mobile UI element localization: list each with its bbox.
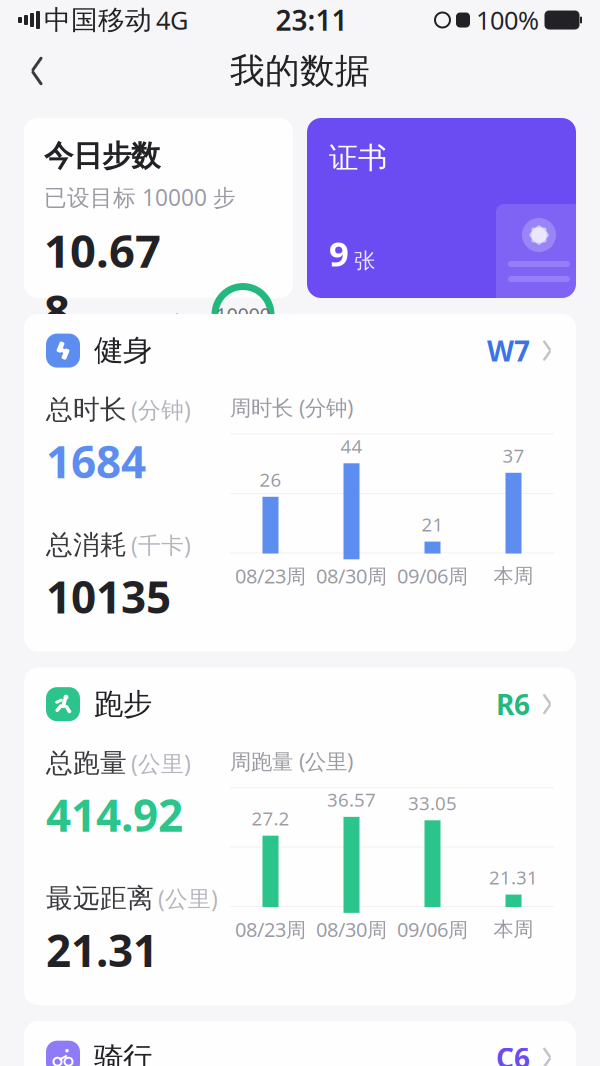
staticText: 中国移动 xyxy=(44,4,152,36)
staticText: 10135 xyxy=(46,567,171,625)
staticText: 100% xyxy=(476,3,539,37)
staticText: 09/06周 xyxy=(397,562,468,589)
staticText: 总跑量 xyxy=(46,747,127,779)
staticText: R6 xyxy=(496,686,530,723)
button[interactable]: 证书 xyxy=(307,118,576,298)
button[interactable]: 跑步 xyxy=(24,668,576,741)
staticText: 最远距离 xyxy=(46,882,154,915)
staticText: 08/23周 xyxy=(235,562,306,589)
staticText: 周时长 (分钟) xyxy=(230,393,353,421)
staticText: 总时长 xyxy=(46,393,127,426)
staticText: 08/30周 xyxy=(316,562,387,589)
staticText: 27.2 xyxy=(251,806,289,831)
staticText: 09/06周 xyxy=(397,916,468,943)
button[interactable]: 健身 xyxy=(24,314,576,387)
staticText: 10000 xyxy=(215,301,270,328)
staticText: 步 xyxy=(166,310,187,336)
staticText: W7 xyxy=(487,332,530,369)
staticText: 21.31 xyxy=(46,921,158,979)
button[interactable]: 今日步数 xyxy=(24,118,293,298)
staticText: 23:11 xyxy=(275,1,347,39)
staticText: 已设目标 10000 步 xyxy=(44,182,236,212)
button[interactable]: 返回 xyxy=(14,48,60,94)
staticText: 26 xyxy=(259,467,281,492)
staticText: (公里) xyxy=(158,883,218,913)
staticText: 本周 xyxy=(493,917,533,942)
staticText: 4G xyxy=(156,3,188,37)
staticText: 08/30周 xyxy=(316,916,387,943)
staticText: (分钟) xyxy=(131,395,191,425)
staticText: 骑行 xyxy=(94,1040,152,1066)
button[interactable]: 骑行 xyxy=(24,1021,576,1066)
staticText: 今日步数 xyxy=(44,138,160,174)
staticText: 37 xyxy=(502,443,524,468)
staticText: 周跑量 (公里) xyxy=(230,747,353,775)
staticText: 总消耗 xyxy=(46,528,127,561)
staticText: 36.57 xyxy=(327,787,376,812)
staticText: (公里) xyxy=(131,748,191,778)
staticText: 9 xyxy=(329,230,349,276)
staticText: 44 xyxy=(340,433,362,458)
staticText: (千卡) xyxy=(131,530,191,560)
staticText: 张 xyxy=(354,248,375,274)
staticText: C6 xyxy=(496,1039,530,1066)
staticText: 414.92 xyxy=(46,785,183,844)
staticText: 33.05 xyxy=(408,790,457,815)
staticText: 1684 xyxy=(46,432,146,490)
staticText: 08/23周 xyxy=(235,916,306,943)
staticText: 10.678 xyxy=(44,220,161,340)
staticText: 21 xyxy=(421,512,443,537)
staticText: 跑步 xyxy=(94,686,152,722)
staticText: 证书 xyxy=(329,140,387,176)
staticText: 健身 xyxy=(94,333,152,369)
staticText: 本周 xyxy=(493,563,533,588)
staticText: 我的数据 xyxy=(230,50,370,92)
staticText: 21.31 xyxy=(489,865,538,890)
